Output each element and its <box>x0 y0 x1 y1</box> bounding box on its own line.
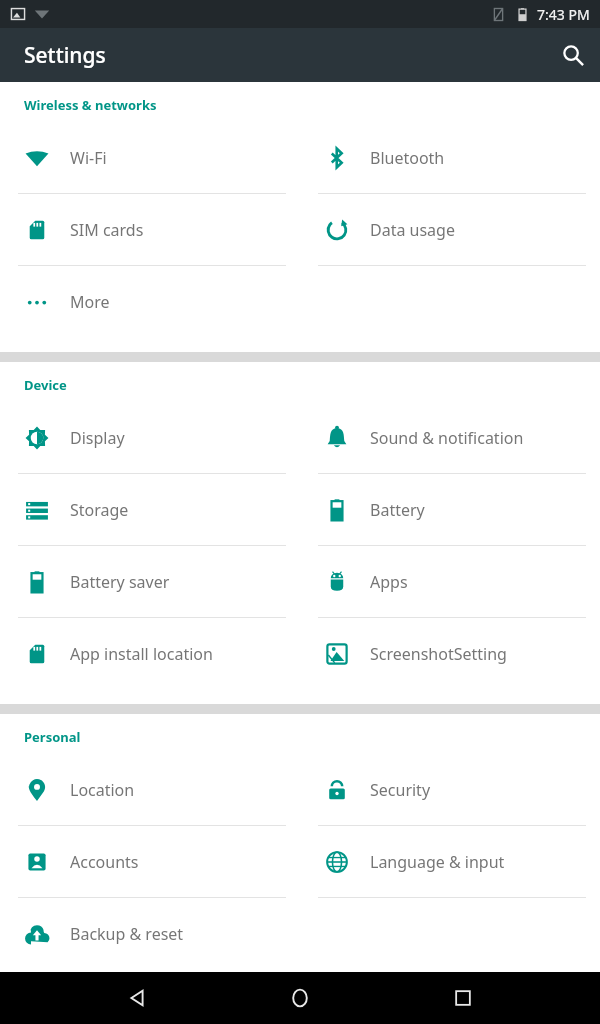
staticText: 7:43 PM <box>537 5 590 24</box>
staticText: Bluetooth <box>370 147 445 169</box>
button[interactable]: Sound & notification <box>300 402 600 474</box>
staticText: Data usage <box>370 219 455 241</box>
staticText: Language & input <box>370 851 505 873</box>
staticText: Backup & reset <box>70 923 184 945</box>
button[interactable]: Back <box>111 972 163 1024</box>
button[interactable]: Home <box>274 972 326 1024</box>
staticText: Accounts <box>70 851 139 873</box>
staticText: Security <box>370 779 431 801</box>
button[interactable]: App install location <box>0 618 300 690</box>
button[interactable]: SIM cards <box>0 194 300 266</box>
staticText: Wi-Fi <box>70 147 107 169</box>
button[interactable]: Search <box>546 28 600 82</box>
button[interactable]: Data usage <box>300 194 600 266</box>
staticText: More <box>70 291 110 313</box>
staticText: Apps <box>370 571 408 593</box>
button[interactable]: ScreenshotSetting <box>300 618 600 690</box>
staticText: ScreenshotSetting <box>370 643 507 665</box>
staticText: Battery saver <box>70 571 170 593</box>
button[interactable]: Backup & reset <box>0 898 300 970</box>
staticText: App install location <box>70 643 213 665</box>
button[interactable]: Battery <box>300 474 600 546</box>
staticText: Battery <box>370 499 425 521</box>
button[interactable]: Recent apps <box>437 972 489 1024</box>
button[interactable]: Storage <box>0 474 300 546</box>
staticText: Wireless & networks <box>24 96 157 114</box>
staticText: Location <box>70 779 135 801</box>
button[interactable]: Accounts <box>0 826 300 898</box>
button[interactable]: Bluetooth <box>300 122 600 194</box>
button[interactable]: Wi-Fi <box>0 122 300 194</box>
button[interactable]: Language & input <box>300 826 600 898</box>
button[interactable]: Security <box>300 754 600 826</box>
button[interactable]: Display <box>0 402 300 474</box>
staticText: Display <box>70 427 125 449</box>
button[interactable]: More <box>0 266 300 338</box>
staticText: Storage <box>70 499 129 521</box>
button[interactable]: Apps <box>300 546 600 618</box>
staticText: Personal <box>24 728 81 746</box>
staticText: Device <box>24 376 67 394</box>
staticText: Sound & notification <box>370 427 524 449</box>
button[interactable]: Battery saver <box>0 546 300 618</box>
staticText: Settings <box>24 41 106 70</box>
button[interactable]: Location <box>0 754 300 826</box>
staticText: SIM cards <box>70 219 144 241</box>
